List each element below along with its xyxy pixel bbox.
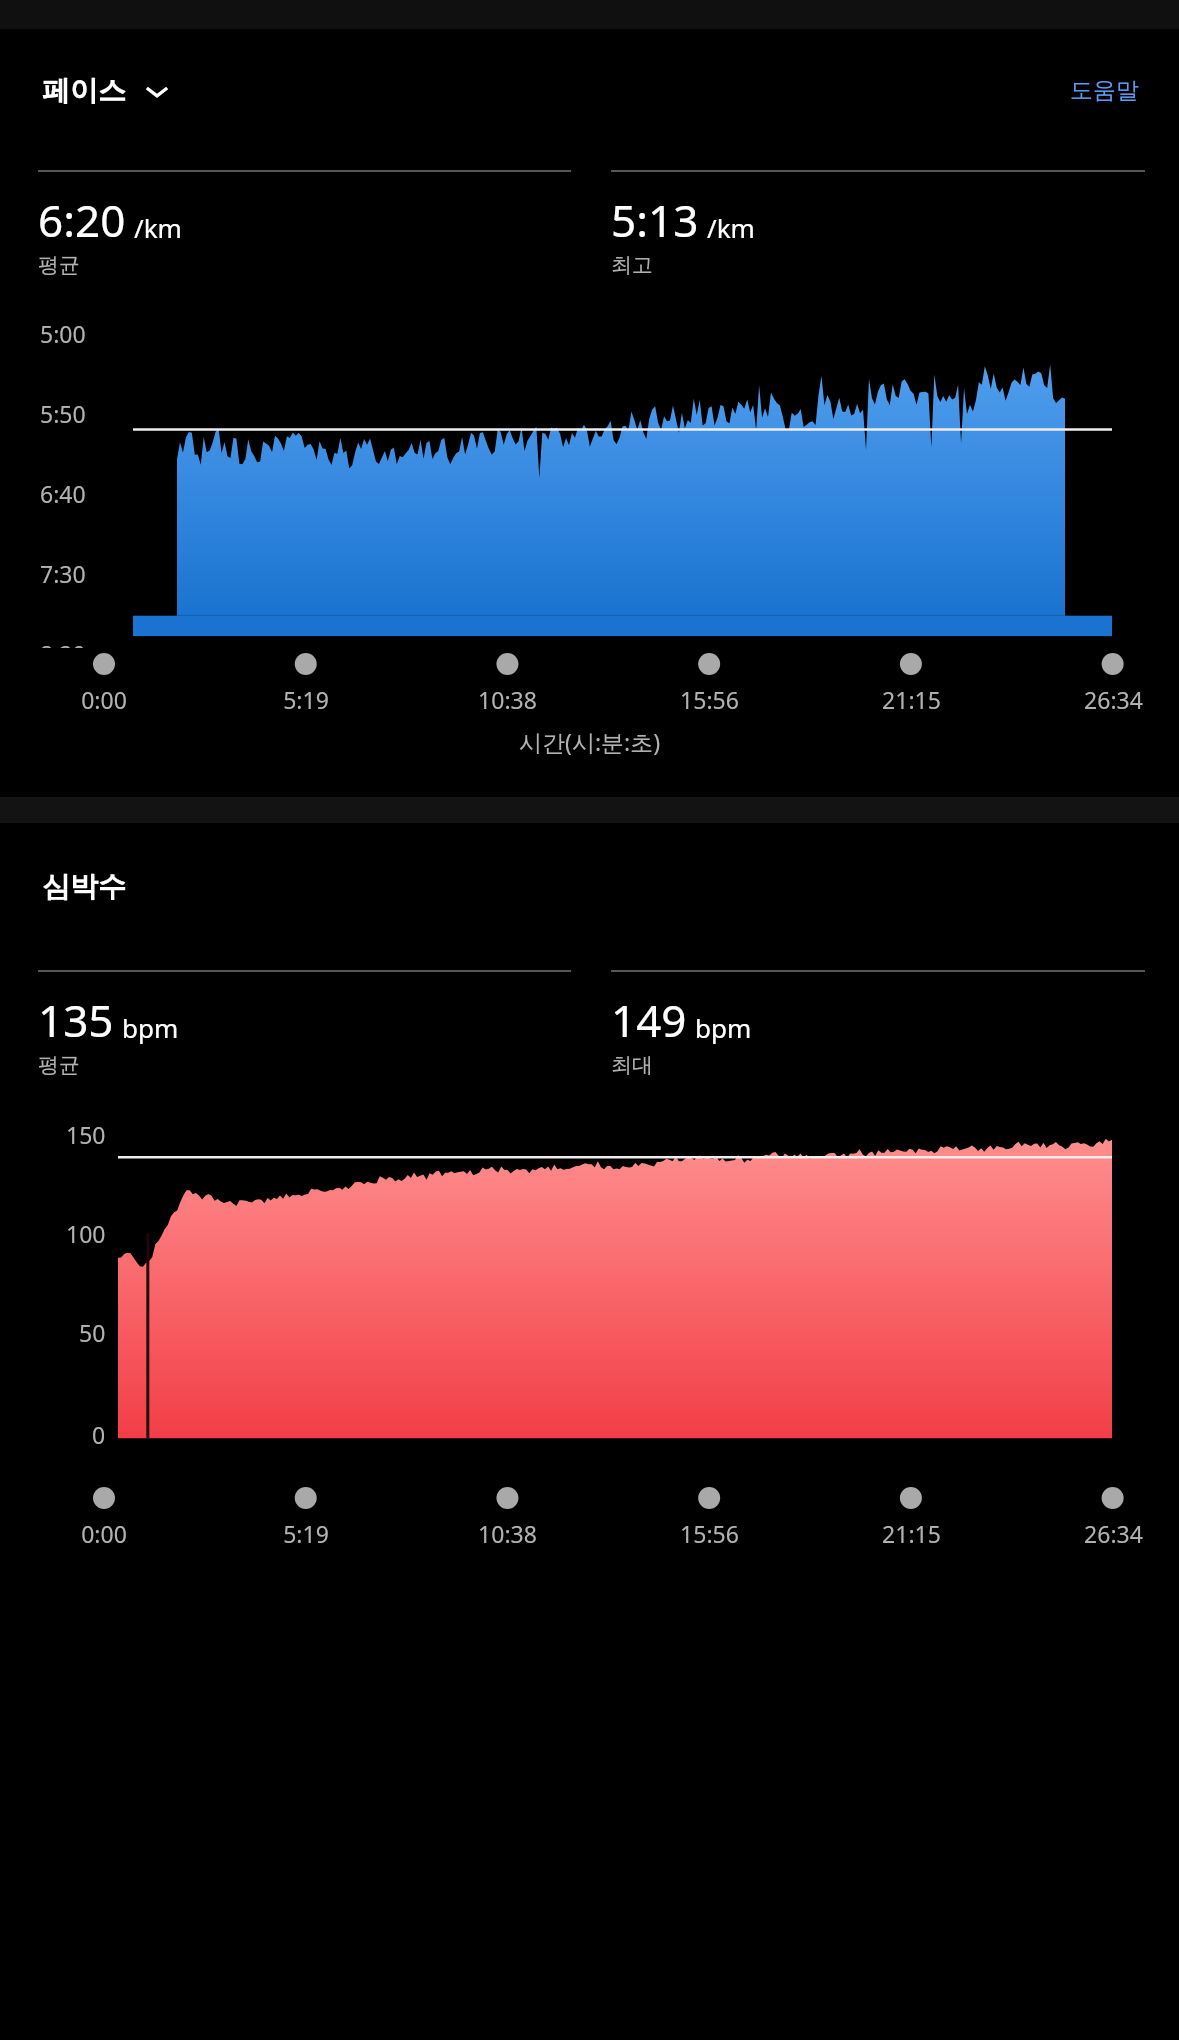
staticText: 7:30	[40, 558, 86, 589]
staticText: 시간(시:분:초)	[519, 726, 661, 757]
staticText: 15:56	[680, 684, 739, 715]
staticText: 6:40	[40, 478, 86, 509]
staticText: bpm	[122, 1010, 179, 1045]
staticText: 0:00	[81, 1518, 127, 1549]
staticText: 10:38	[478, 684, 537, 715]
staticText: 150	[66, 1119, 106, 1150]
staticText: /km	[707, 210, 755, 245]
staticText: 0	[92, 1419, 106, 1450]
staticText: 21:15	[882, 684, 941, 715]
staticText: 5:19	[283, 1518, 329, 1549]
staticText: 149	[611, 990, 687, 1050]
staticText: 21:15	[882, 1518, 941, 1549]
staticText: 최대	[611, 1052, 653, 1078]
staticText: 5:00	[40, 318, 86, 349]
staticText: 100	[66, 1218, 106, 1249]
staticText: 페이스	[42, 73, 126, 108]
staticText: 135	[38, 990, 114, 1050]
staticText: 5:50	[40, 398, 86, 429]
staticText: 심박수	[42, 869, 126, 904]
other: Change metric	[142, 76, 172, 106]
staticText: 26:34	[1084, 1518, 1143, 1549]
button[interactable]: 도움말	[1064, 68, 1145, 113]
staticText: 평균	[38, 252, 80, 278]
button[interactable]: 페이스	[38, 65, 176, 116]
staticText: 26:34	[1084, 684, 1143, 715]
staticText: 평균	[38, 1052, 80, 1078]
staticText: 5:13	[611, 190, 699, 250]
staticText: 10:38	[478, 1518, 537, 1549]
staticText: 50	[79, 1317, 106, 1348]
staticText: 6:20	[38, 190, 126, 250]
staticText: 5:19	[283, 684, 329, 715]
staticText: 8:20	[40, 638, 86, 648]
staticText: 0:00	[81, 684, 127, 715]
staticText: 도움말	[1070, 76, 1139, 105]
staticText: /km	[134, 210, 182, 245]
staticText: 15:56	[680, 1518, 739, 1549]
staticText: bpm	[695, 1010, 752, 1045]
staticText: 최고	[611, 252, 653, 278]
